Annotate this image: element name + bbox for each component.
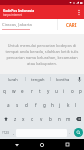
staticText: x: [22, 116, 25, 122]
button[interactable]: Home: [34, 139, 50, 150]
staticText: h: [51, 102, 54, 108]
staticText: Untuk memulai pencarian kodepos di tempa…: [4, 43, 80, 66]
staticText: m: [66, 116, 71, 122]
staticText: u: [55, 88, 58, 94]
staticText: d: [25, 102, 28, 108]
staticText: Ciracas, Jakarta: [2, 22, 32, 28]
staticText: o: [71, 88, 74, 94]
button[interactable]: m: [64, 112, 73, 126]
staticText: ,: [13, 130, 15, 135]
staticText: j: [59, 102, 61, 108]
staticText: ?123: [2, 131, 9, 135]
button[interactable]: l: [72, 98, 80, 112]
button[interactable]: k: [64, 98, 72, 112]
staticText: g: [43, 102, 46, 108]
staticText: kontha: [56, 77, 70, 82]
staticText: v: [40, 116, 43, 122]
button[interactable]: Backspace: [73, 112, 84, 126]
staticText: k: [67, 102, 70, 108]
staticText: n: [58, 116, 61, 122]
staticText: e: [21, 88, 24, 94]
button[interactable]: q: [0, 84, 9, 98]
button[interactable]: x: [19, 112, 28, 126]
button[interactable]: y: [44, 84, 52, 98]
staticText: y: [47, 88, 50, 94]
staticText: z: [14, 116, 17, 122]
button[interactable]: Search: [72, 126, 84, 139]
staticText: w: [12, 88, 16, 94]
staticText: f: [35, 102, 37, 108]
button[interactable]: u: [52, 84, 60, 98]
button[interactable]: kontha: [51, 74, 75, 84]
button[interactable]: More options: [74, 7, 84, 17]
staticText: a: [7, 102, 10, 108]
button[interactable]: w: [9, 84, 18, 98]
button[interactable]: ,: [11, 126, 16, 139]
staticText: lurah: [8, 77, 18, 82]
button[interactable]: s: [13, 98, 22, 112]
staticText: l: [75, 102, 77, 108]
button[interactable]: r: [27, 84, 36, 98]
button[interactable]: Voice input: [75, 74, 84, 84]
button[interactable]: c: [28, 112, 37, 126]
staticText: KodePos Indonesia: [3, 8, 35, 12]
button[interactable]: f: [31, 98, 40, 112]
staticText: r: [31, 88, 33, 94]
button[interactable]: g: [40, 98, 48, 112]
button[interactable]: h: [48, 98, 56, 112]
button[interactable]: ?123: [0, 126, 11, 139]
button[interactable]: b: [46, 112, 55, 126]
button[interactable]: z: [11, 112, 19, 126]
staticText: s: [16, 102, 19, 108]
staticText: b: [49, 116, 52, 122]
button[interactable]: Back: [9, 139, 25, 150]
button[interactable]: lurah: [0, 74, 25, 84]
staticText: tanpa internet: [3, 13, 22, 17]
button[interactable]: p: [76, 84, 84, 98]
button[interactable]: e: [18, 84, 27, 98]
staticText: p: [79, 88, 82, 94]
button[interactable]: i: [60, 84, 68, 98]
staticText: c: [31, 116, 34, 122]
button[interactable]: t: [36, 84, 44, 98]
staticText: i: [63, 88, 65, 94]
button[interactable]: j: [56, 98, 64, 112]
staticText: .: [69, 130, 71, 135]
staticText: t: [39, 88, 41, 94]
button[interactable]: Shift: [0, 112, 11, 126]
staticText: CARI: [66, 22, 77, 28]
button[interactable]: Recents: [59, 139, 75, 150]
staticText: tengah: [31, 77, 45, 82]
button[interactable]: CARI: [58, 19, 84, 30]
button[interactable]: n: [55, 112, 64, 126]
button[interactable]: tengah: [26, 74, 50, 84]
button[interactable]: o: [68, 84, 76, 98]
button[interactable]: d: [22, 98, 31, 112]
button[interactable]: a: [4, 98, 13, 112]
staticText: q: [3, 88, 6, 94]
button[interactable]: v: [37, 112, 46, 126]
